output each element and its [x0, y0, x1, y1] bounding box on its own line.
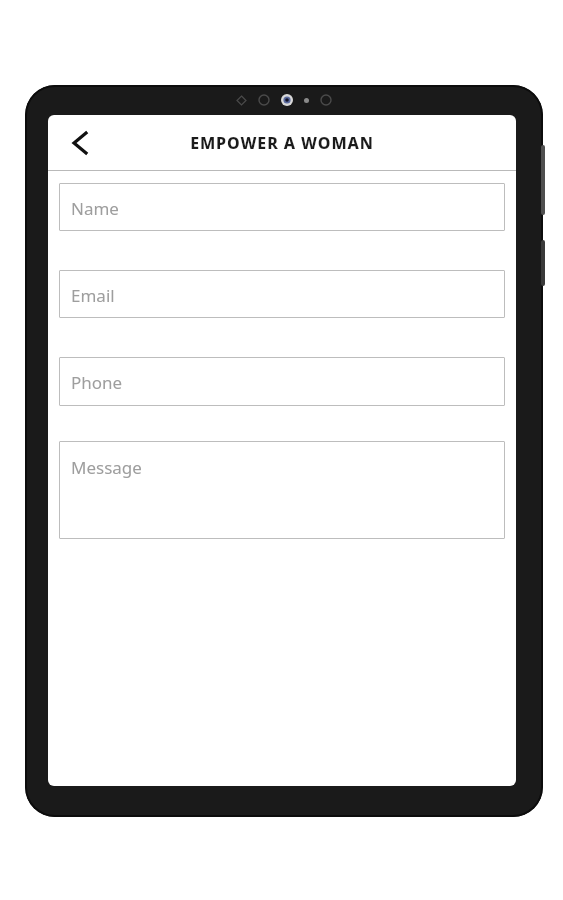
staticText: Name	[71, 197, 119, 220]
button[interactable]: Message	[59, 441, 505, 539]
button[interactable]: Name	[59, 183, 505, 231]
staticText: Email	[71, 284, 115, 307]
staticText: Phone	[71, 371, 123, 394]
staticText: EMPOWER A WOMAN	[48, 132, 516, 154]
button[interactable]: Phone	[59, 357, 505, 406]
button[interactable]: Back	[58, 122, 100, 164]
button[interactable]: Email	[59, 270, 505, 318]
staticText: Message	[71, 456, 142, 479]
